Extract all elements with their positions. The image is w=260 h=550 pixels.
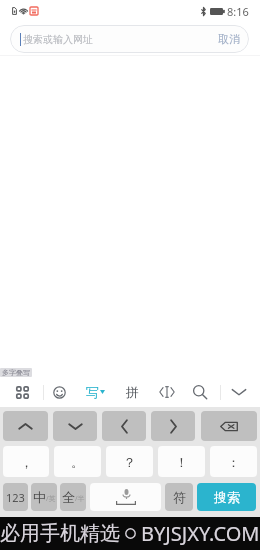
button[interactable]: Move left [102,411,146,441]
button[interactable]: 。 [54,446,101,477]
button[interactable]: Keyboard layouts [7,377,37,407]
button[interactable]: Move right [151,411,195,441]
button[interactable]: 符 [165,483,193,511]
staticText: 多字叠写 [2,368,30,377]
button[interactable]: 全 [60,483,86,511]
button[interactable]: ？ [106,446,153,477]
staticText: 123 [6,490,25,505]
button[interactable]: Backspace [201,411,257,441]
button[interactable]: ， [3,446,49,477]
button[interactable]: 搜索 [197,483,256,511]
staticText: 写 [86,384,99,400]
button[interactable]: 写 [77,377,113,407]
staticText: 8:16 [227,4,249,19]
staticText: ？ [123,454,136,470]
button[interactable]: 取消 [218,25,240,53]
staticText: 。 [71,454,84,470]
staticText: 全 [62,489,75,505]
staticText: 取消 [218,32,240,46]
button[interactable]: 123 [3,483,28,511]
staticText: /英 [46,494,56,504]
staticText: ： [227,454,240,470]
button[interactable]: 拼 [118,377,146,407]
staticText: 必用手机精选 [0,521,120,546]
button[interactable]: Hide keyboard [224,377,254,407]
button[interactable]: ！ [158,446,205,477]
staticText: /半 [75,494,85,504]
button[interactable]: Search [185,377,215,407]
button[interactable]: Scroll down [53,411,97,441]
button[interactable]: Emoji [44,377,74,407]
staticText: ！ [175,454,188,470]
staticText: 拼 [126,384,139,400]
button[interactable]: Scroll up [3,411,48,441]
staticText: 搜索或输入网址 [23,33,93,46]
button[interactable]: 搜索或输入网址 [10,25,249,53]
staticText: ， [20,454,33,470]
button[interactable]: 中 [31,483,57,511]
button[interactable]: ： [210,446,257,477]
button[interactable]: Space / Voice input [90,483,161,511]
staticText: BYJSJXY.COM [141,520,260,547]
staticText: 中 [33,489,46,505]
staticText: 搜索 [214,489,240,505]
button[interactable]: Text cursor [152,377,182,407]
staticText: 符 [173,489,186,505]
